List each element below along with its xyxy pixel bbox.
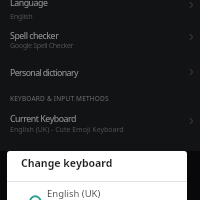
staticText: KEYBOARD & INPUT METHODS	[10, 94, 109, 103]
staticText: English (UK)	[47, 187, 101, 200]
staticText: English (UK) - Cute Emoji Keyboard	[10, 125, 124, 135]
button[interactable]	[0, 28, 200, 54]
button[interactable]	[0, 0, 200, 24]
staticText: Current Keyboard	[10, 113, 76, 125]
staticText: Personal dictionary	[10, 67, 78, 79]
button[interactable]	[0, 111, 200, 137]
staticText: Language	[10, 0, 48, 9]
staticText: English	[10, 11, 33, 21]
staticText: Spell checker	[10, 30, 59, 42]
button[interactable]	[7, 182, 187, 200]
staticText: Google Spell Checker	[10, 40, 74, 50]
staticText: Change keyboard	[21, 156, 113, 170]
button[interactable]	[0, 62, 200, 82]
